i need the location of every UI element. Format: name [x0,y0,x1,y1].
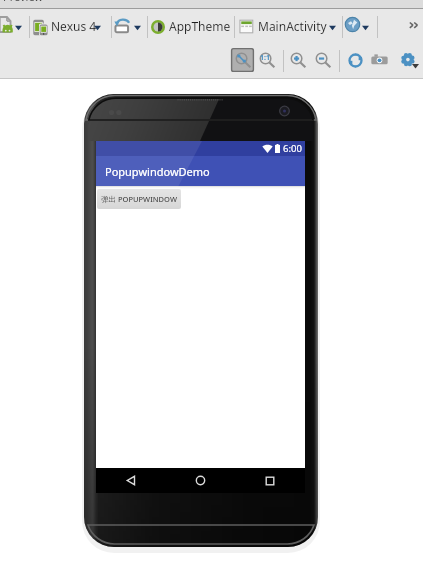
button[interactable]: Back [96,468,165,493]
staticText: AppTheme [169,18,231,34]
button[interactable]: Nexus 4 [33,18,97,38]
button[interactable]: Device configuration [0,14,15,36]
staticText: 1:1 [260,53,270,63]
staticText: Preview [3,0,44,4]
button[interactable]: More actions [406,17,422,33]
button[interactable]: Actual size [255,48,278,72]
button[interactable]: MainActivity [239,18,327,38]
staticText: MainActivity [258,18,327,34]
button[interactable]: Home [165,468,235,493]
button[interactable]: Orientation [114,16,133,36]
staticText: 弹出 POPUPWINDOW [101,194,177,204]
staticText: Nexus 4 [51,18,97,34]
button[interactable]: Recents [235,468,305,493]
button[interactable]: 弹出 POPUPWINDOW [97,189,181,209]
button[interactable]: Zoom in [286,48,309,72]
button[interactable]: Settings [397,48,420,72]
staticText: PopupwindowDemo [105,164,210,179]
staticText: 6:00 [283,142,302,155]
button[interactable]: AppTheme [151,18,231,38]
button[interactable]: Locale [345,17,361,33]
button[interactable]: Screenshot [368,48,391,72]
button[interactable]: Zoom to fit [231,48,254,72]
button[interactable]: Refresh [344,48,367,72]
button[interactable]: Zoom out [311,48,334,72]
